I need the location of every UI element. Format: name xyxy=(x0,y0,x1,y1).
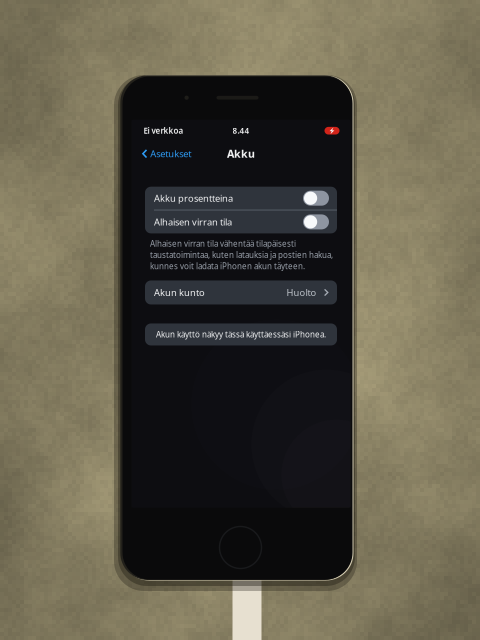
button[interactable]: Akku prosentteina xyxy=(145,187,337,210)
staticText: Akun kunto xyxy=(154,286,205,299)
staticText: Akun käyttö näkyy tässä käyttäessäsi iPh… xyxy=(156,329,326,340)
staticText: Alhaisen virran tila vähentää tilapäises… xyxy=(150,238,333,271)
button[interactable]: Back to Asetukset xyxy=(131,145,195,163)
staticText: Alhaisen virran tila xyxy=(154,216,232,228)
staticText: Ei verkkoa xyxy=(143,125,183,136)
button[interactable]: Alhaisen virran tila xyxy=(145,210,337,233)
staticText: Asetukset xyxy=(150,147,191,160)
staticText: Akku xyxy=(227,147,255,161)
staticText: Huolto xyxy=(287,286,317,299)
staticText: 8.44 xyxy=(232,125,249,136)
button[interactable]: Akun kunto xyxy=(145,280,337,304)
staticText: Akku prosentteina xyxy=(154,192,233,204)
